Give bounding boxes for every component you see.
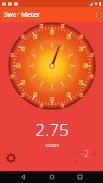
staticText: -2	[81, 147, 90, 159]
staticText: Swar Meter	[4, 10, 40, 19]
button[interactable]: Tuning settings	[6, 153, 16, 163]
button[interactable]: Home	[46, 171, 58, 183]
button[interactable]: Increase sensitivity	[90, 149, 99, 158]
button[interactable]: Back	[17, 171, 29, 183]
staticText: octave	[45, 142, 59, 148]
button[interactable]: Decrease sensitivity	[72, 149, 81, 158]
button[interactable]: More options	[90, 8, 103, 21]
button[interactable]: Recent apps	[74, 171, 86, 183]
staticText: 2.75	[35, 118, 69, 141]
